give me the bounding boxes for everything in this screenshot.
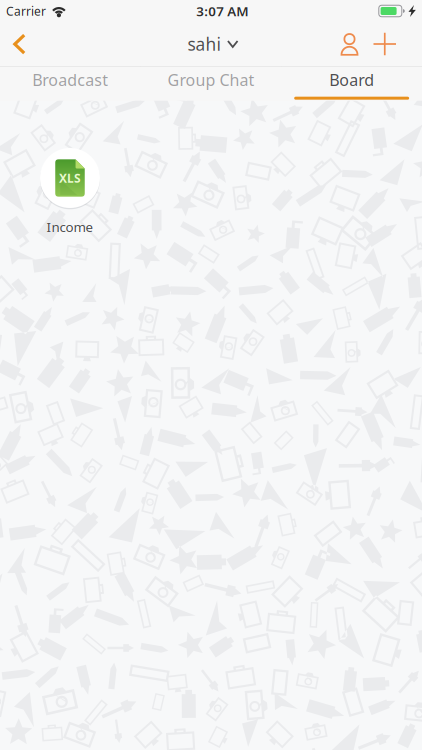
staticText: Group Chat xyxy=(167,69,254,90)
staticText: Board xyxy=(329,69,374,90)
button[interactable]: XLS xyxy=(27,147,113,236)
button[interactable]: Broadcast xyxy=(0,67,141,101)
staticText: sahi xyxy=(188,32,221,55)
button[interactable]: Board xyxy=(281,67,422,101)
button[interactable]: Contacts xyxy=(331,22,367,66)
staticText: 3:07 AM xyxy=(196,2,248,20)
button[interactable]: Add xyxy=(367,22,422,66)
button[interactable]: Group Chat xyxy=(141,67,281,101)
button[interactable]: sahi xyxy=(188,22,238,66)
button[interactable]: Back xyxy=(0,22,40,66)
staticText: XLS xyxy=(59,170,81,186)
staticText: Broadcast xyxy=(32,69,108,90)
staticText: Carrier xyxy=(6,3,46,19)
staticText: Income xyxy=(46,218,93,236)
